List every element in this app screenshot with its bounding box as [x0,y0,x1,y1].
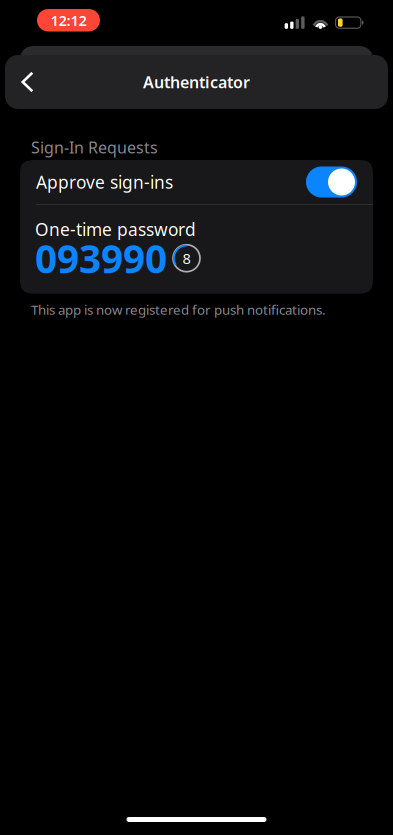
staticText: This app is now registered for push noti… [31,301,326,318]
button[interactable]: Approve sign-ins [20,160,373,204]
staticText: 8 [182,248,190,268]
button[interactable]: Back [5,60,49,104]
staticText: 093990 [35,232,167,284]
staticText: One-time password [35,218,196,241]
staticText: Authenticator [143,71,250,93]
staticText: 12:12 [50,10,86,30]
staticText: Sign-In Requests [31,137,158,158]
staticText: Approve sign-ins [36,170,173,193]
